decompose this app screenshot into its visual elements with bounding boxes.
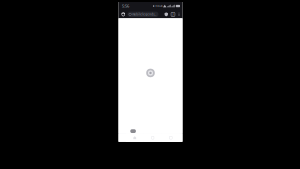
staticText: mobilelegends.com bbox=[132, 13, 156, 16]
button[interactable]: Menu bbox=[176, 10, 181, 18]
button[interactable]: Tabs bbox=[169, 10, 176, 18]
button[interactable]: mobilelegends.com bbox=[127, 12, 158, 17]
staticText: 3 bbox=[172, 13, 174, 16]
button[interactable]: Home bbox=[126, 133, 144, 142]
button[interactable]: Brave Shields bbox=[119, 10, 127, 18]
staticText: 5:56 bbox=[122, 3, 129, 9]
staticText: VoLTE bbox=[155, 4, 162, 8]
button[interactable]: Site shields bbox=[163, 10, 169, 18]
